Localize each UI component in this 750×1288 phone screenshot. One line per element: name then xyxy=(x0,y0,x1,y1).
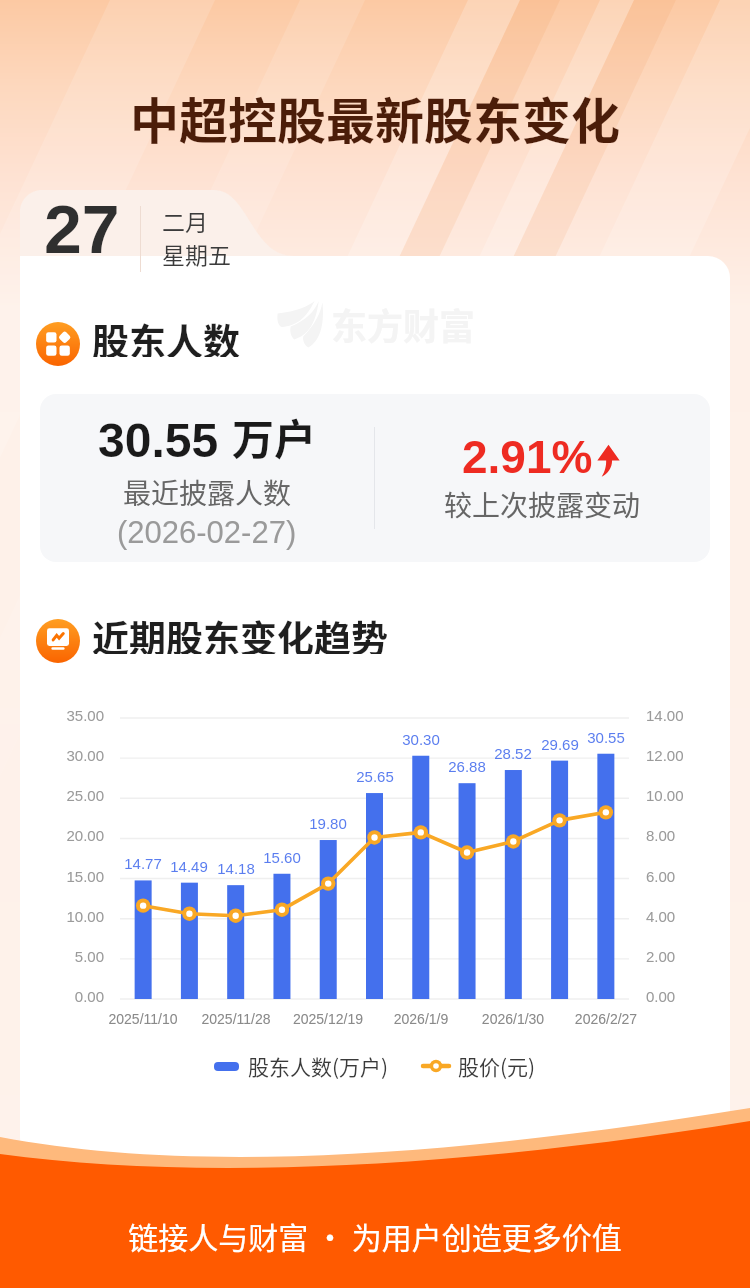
staticText: 27 xyxy=(44,191,120,267)
staticText: 万户 xyxy=(232,406,317,467)
staticText: 35.00 xyxy=(40,707,104,724)
staticText: 链接人与财富 · 为用户创造更多价值 xyxy=(0,1214,750,1257)
staticText: 2.91% xyxy=(462,431,593,482)
staticText: 25.00 xyxy=(40,787,104,804)
staticText: 4.00 xyxy=(646,908,710,925)
staticText: 2.00 xyxy=(646,948,710,965)
staticText: 东方财富 xyxy=(331,298,476,350)
staticText: 26.88 xyxy=(435,758,499,775)
staticText: 8.00 xyxy=(646,827,710,844)
staticText: (2026-02-27) xyxy=(117,515,297,550)
staticText: 二月 xyxy=(162,204,208,237)
staticText: 近期股东变化趋势 xyxy=(92,610,388,654)
staticText: 12.00 xyxy=(646,747,710,764)
staticText: 2025/11/10 xyxy=(88,1011,198,1027)
button[interactable]: Shareholder count xyxy=(36,322,240,366)
staticText: 2026/1/30 xyxy=(458,1011,568,1027)
staticText: 较上次披露变动 xyxy=(444,484,641,525)
staticText: 30.55 xyxy=(98,414,219,468)
staticText: 28.52 xyxy=(481,745,545,762)
staticText: 30.00 xyxy=(40,747,104,764)
staticText: 2026/2/27 xyxy=(551,1011,661,1027)
staticText: 19.80 xyxy=(296,815,360,832)
staticText: 6.00 xyxy=(646,868,710,885)
staticText: 星期五 xyxy=(162,237,231,270)
staticText: 29.69 xyxy=(528,736,592,753)
staticText: 25.65 xyxy=(343,768,407,785)
staticText: 最近披露人数 xyxy=(123,472,292,513)
staticText: 14.77 xyxy=(111,855,175,872)
staticText: 14.00 xyxy=(646,707,710,724)
staticText: 15.00 xyxy=(40,868,104,885)
staticText: 30.30 xyxy=(389,731,453,748)
staticText: 中超控股最新股东变化 xyxy=(0,82,750,153)
staticText: 2026/1/9 xyxy=(366,1011,476,1027)
staticText: 14.49 xyxy=(157,858,221,875)
staticText: 5.00 xyxy=(40,948,104,965)
staticText: 2025/12/19 xyxy=(273,1011,383,1027)
staticText: 0.00 xyxy=(646,988,710,1005)
staticText: 30.55 xyxy=(574,729,638,746)
staticText: 2025/11/28 xyxy=(181,1011,291,1027)
staticText: 10.00 xyxy=(40,908,104,925)
staticText: 股东人数(万户) xyxy=(248,1051,389,1081)
staticText: 10.00 xyxy=(646,787,710,804)
staticText: 20.00 xyxy=(40,827,104,844)
staticText: 14.18 xyxy=(204,860,268,877)
button[interactable]: Trend chart xyxy=(36,619,388,663)
staticText: 股东人数 xyxy=(92,313,240,357)
staticText: 0.00 xyxy=(40,988,104,1005)
other: Shareholder count xyxy=(36,322,80,366)
other: Trend chart xyxy=(36,619,80,663)
staticText: 股价(元) xyxy=(458,1051,536,1081)
staticText: 15.60 xyxy=(250,849,314,866)
